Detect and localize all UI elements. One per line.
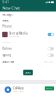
button[interactable]: SEND <box>23 70 33 75</box>
button[interactable]: CallApp <box>0 84 56 100</box>
staticText: INSTALL <box>46 87 52 89</box>
staticText: Online <box>2 47 12 50</box>
staticText: Message <box>2 13 13 16</box>
staticText: Typing <box>2 53 11 57</box>
staticText: Name <box>2 19 9 22</box>
button[interactable]: Sent as Media <box>0 29 56 39</box>
staticText: Phone <box>2 25 12 28</box>
staticText: SEND <box>25 71 31 74</box>
staticText: Shared photo <box>9 36 19 37</box>
button[interactable]: Online <box>0 45 56 52</box>
staticText: Status Text <box>2 60 14 63</box>
button[interactable]: Status Text <box>0 58 56 65</box>
staticText: Sent as Media <box>9 32 27 35</box>
staticText: Not set <box>44 60 54 63</box>
button[interactable]: Message <box>0 11 56 17</box>
button[interactable]: Name <box>0 17 56 23</box>
staticText: LAST SEEN <box>2 42 10 43</box>
staticText: New Chat <box>2 5 19 11</box>
staticText: Caller ID <box>18 91 23 93</box>
button[interactable]: Phone <box>0 23 56 29</box>
staticText: ★★★★★ <box>13 91 18 93</box>
staticText: 9:41 <box>2 0 9 4</box>
button[interactable]: Typing <box>0 52 56 58</box>
staticText: CallApp <box>13 86 24 90</box>
